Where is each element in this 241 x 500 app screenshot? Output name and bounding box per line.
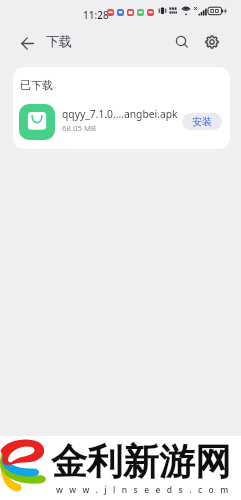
button[interactable]: 安装: [182, 113, 222, 130]
staticText: 安装: [192, 115, 212, 128]
staticText: 11:28: [83, 8, 109, 22]
staticText: 68.05 MB: [62, 123, 97, 134]
button[interactable]: Back: [13, 24, 41, 62]
staticText: www.jlnseeds.com: [56, 484, 235, 496]
staticText: qqyy_7.1.0....angbei.apk: [62, 107, 178, 121]
staticText: 已下载: [20, 78, 53, 92]
staticText: 下载: [46, 33, 72, 49]
staticText: 金利新游网: [51, 439, 231, 484]
button[interactable]: Settings: [198, 23, 226, 61]
button[interactable]: Search: [168, 23, 196, 61]
